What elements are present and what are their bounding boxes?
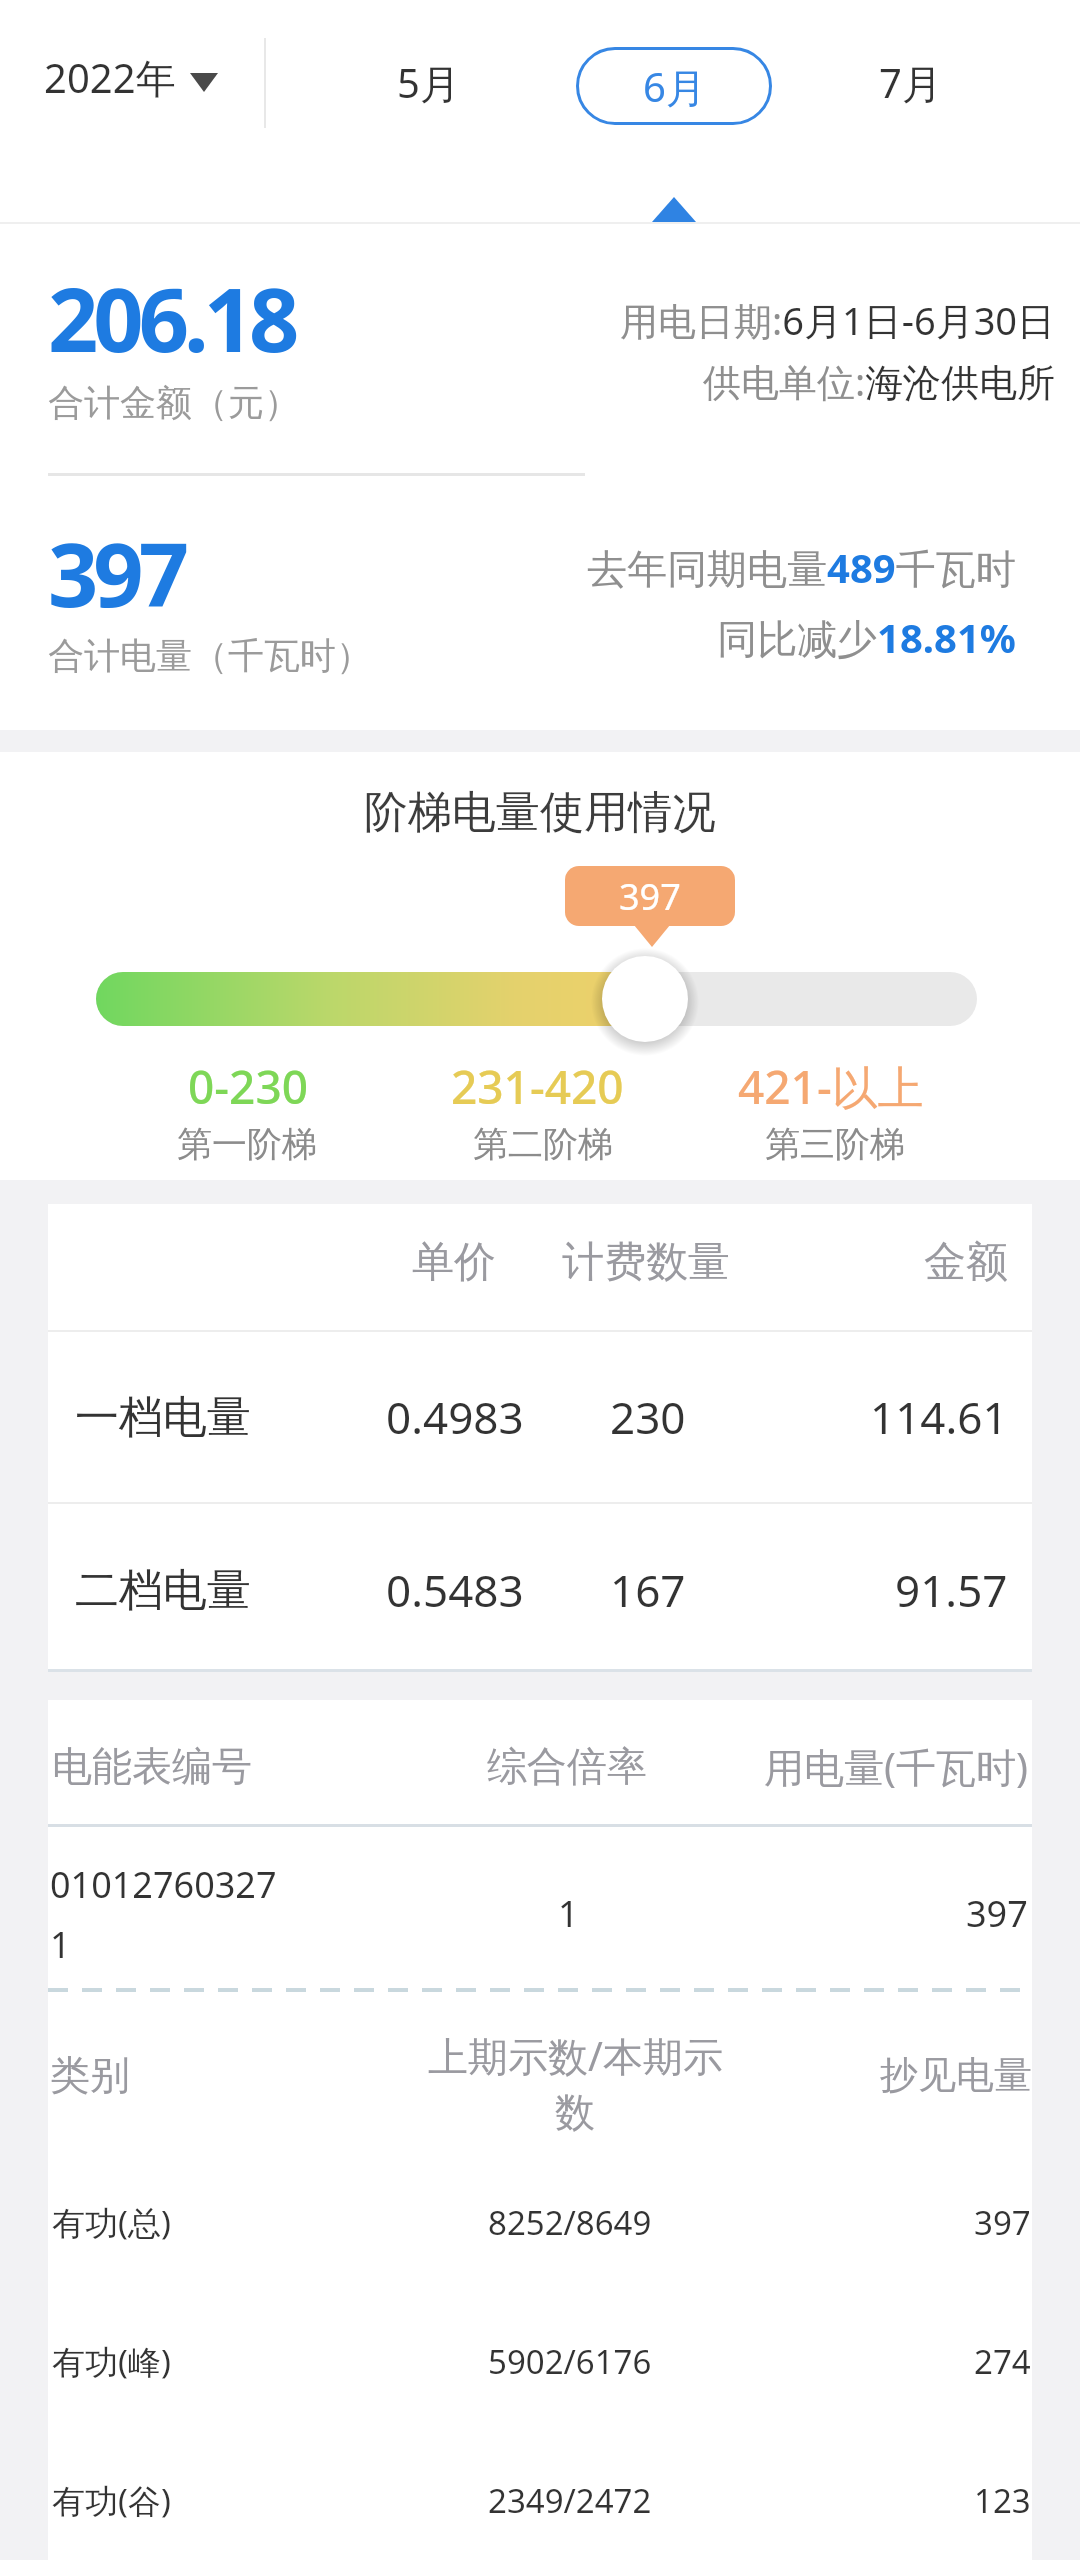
staticText: 167 bbox=[610, 1560, 686, 1620]
staticText: 同比减少18.81% bbox=[717, 610, 1016, 665]
staticText: 单价 bbox=[412, 1236, 496, 1289]
staticText: 第三阶梯 bbox=[765, 1122, 905, 1166]
staticText: 397 bbox=[619, 872, 681, 921]
staticText: 123 bbox=[974, 2478, 1031, 2523]
staticText: 二档电量 bbox=[75, 1563, 251, 1618]
staticText: 5月 bbox=[397, 55, 460, 110]
button[interactable]: 7月 bbox=[830, 40, 990, 124]
staticText: 397 bbox=[966, 1889, 1028, 1938]
staticText: 1 bbox=[50, 1920, 71, 1969]
staticText: 合计电量（千瓦时） bbox=[48, 633, 372, 678]
staticText: 2349/2472 bbox=[488, 2478, 652, 2523]
staticText: 114.61 bbox=[870, 1387, 1008, 1447]
staticText: 01012760327 bbox=[50, 1860, 277, 1909]
staticText: 206.18 bbox=[48, 258, 295, 378]
staticText: 类别 bbox=[50, 2050, 130, 2100]
button[interactable]: 2022年 bbox=[44, 50, 218, 105]
staticText: 电能表编号 bbox=[52, 1741, 252, 1791]
staticText: 去年同期电量489千瓦时 bbox=[587, 540, 1016, 595]
staticText: 1 bbox=[558, 1889, 579, 1938]
staticText: 0.5483 bbox=[386, 1560, 524, 1620]
staticText: 用电量(千瓦时) bbox=[764, 1739, 1028, 1794]
staticText: 0.4983 bbox=[386, 1387, 524, 1447]
staticText: 有功(谷) bbox=[52, 2478, 171, 2523]
staticText: 综合倍率 bbox=[487, 1741, 647, 1791]
button[interactable]: 6月 bbox=[576, 47, 772, 125]
staticText: 金额 bbox=[924, 1236, 1008, 1289]
staticText: 397 bbox=[974, 2200, 1031, 2245]
staticText: 第一阶梯 bbox=[177, 1122, 317, 1166]
button[interactable]: 5月 bbox=[348, 40, 508, 124]
staticText: 抄见电量 bbox=[880, 2051, 1032, 2099]
staticText: 397 bbox=[48, 513, 185, 633]
staticText: 6月 bbox=[643, 59, 706, 114]
staticText: 第二阶梯 bbox=[473, 1122, 613, 1166]
staticText: 5902/6176 bbox=[488, 2339, 652, 2384]
staticText: 8252/8649 bbox=[488, 2200, 652, 2245]
staticText: 421-以上 bbox=[738, 1055, 924, 1118]
staticText: 一档电量 bbox=[75, 1390, 251, 1445]
staticText: 上期示数/本期示 bbox=[428, 2028, 723, 2083]
staticText: 0-230 bbox=[188, 1055, 309, 1118]
staticText: 230 bbox=[610, 1387, 686, 1447]
staticText: 7月 bbox=[879, 55, 942, 110]
staticText: 91.57 bbox=[895, 1560, 1008, 1620]
staticText: 有功(峰) bbox=[52, 2339, 171, 2384]
button[interactable] bbox=[590, 944, 700, 1054]
staticText: 供电单位:海沧供电所 bbox=[703, 355, 1056, 407]
staticText: 阶梯电量使用情况 bbox=[364, 785, 716, 840]
staticText: 计费数量 bbox=[562, 1236, 730, 1289]
staticText: 231-420 bbox=[451, 1055, 624, 1118]
staticText: 合计金额（元） bbox=[48, 380, 300, 425]
staticText: 数 bbox=[555, 2087, 595, 2137]
staticText: 用电日期:6月1日-6月30日 bbox=[620, 294, 1056, 346]
staticText: 2022年 bbox=[44, 50, 176, 105]
staticText: 有功(总) bbox=[52, 2200, 171, 2245]
staticText: 274 bbox=[974, 2339, 1031, 2384]
